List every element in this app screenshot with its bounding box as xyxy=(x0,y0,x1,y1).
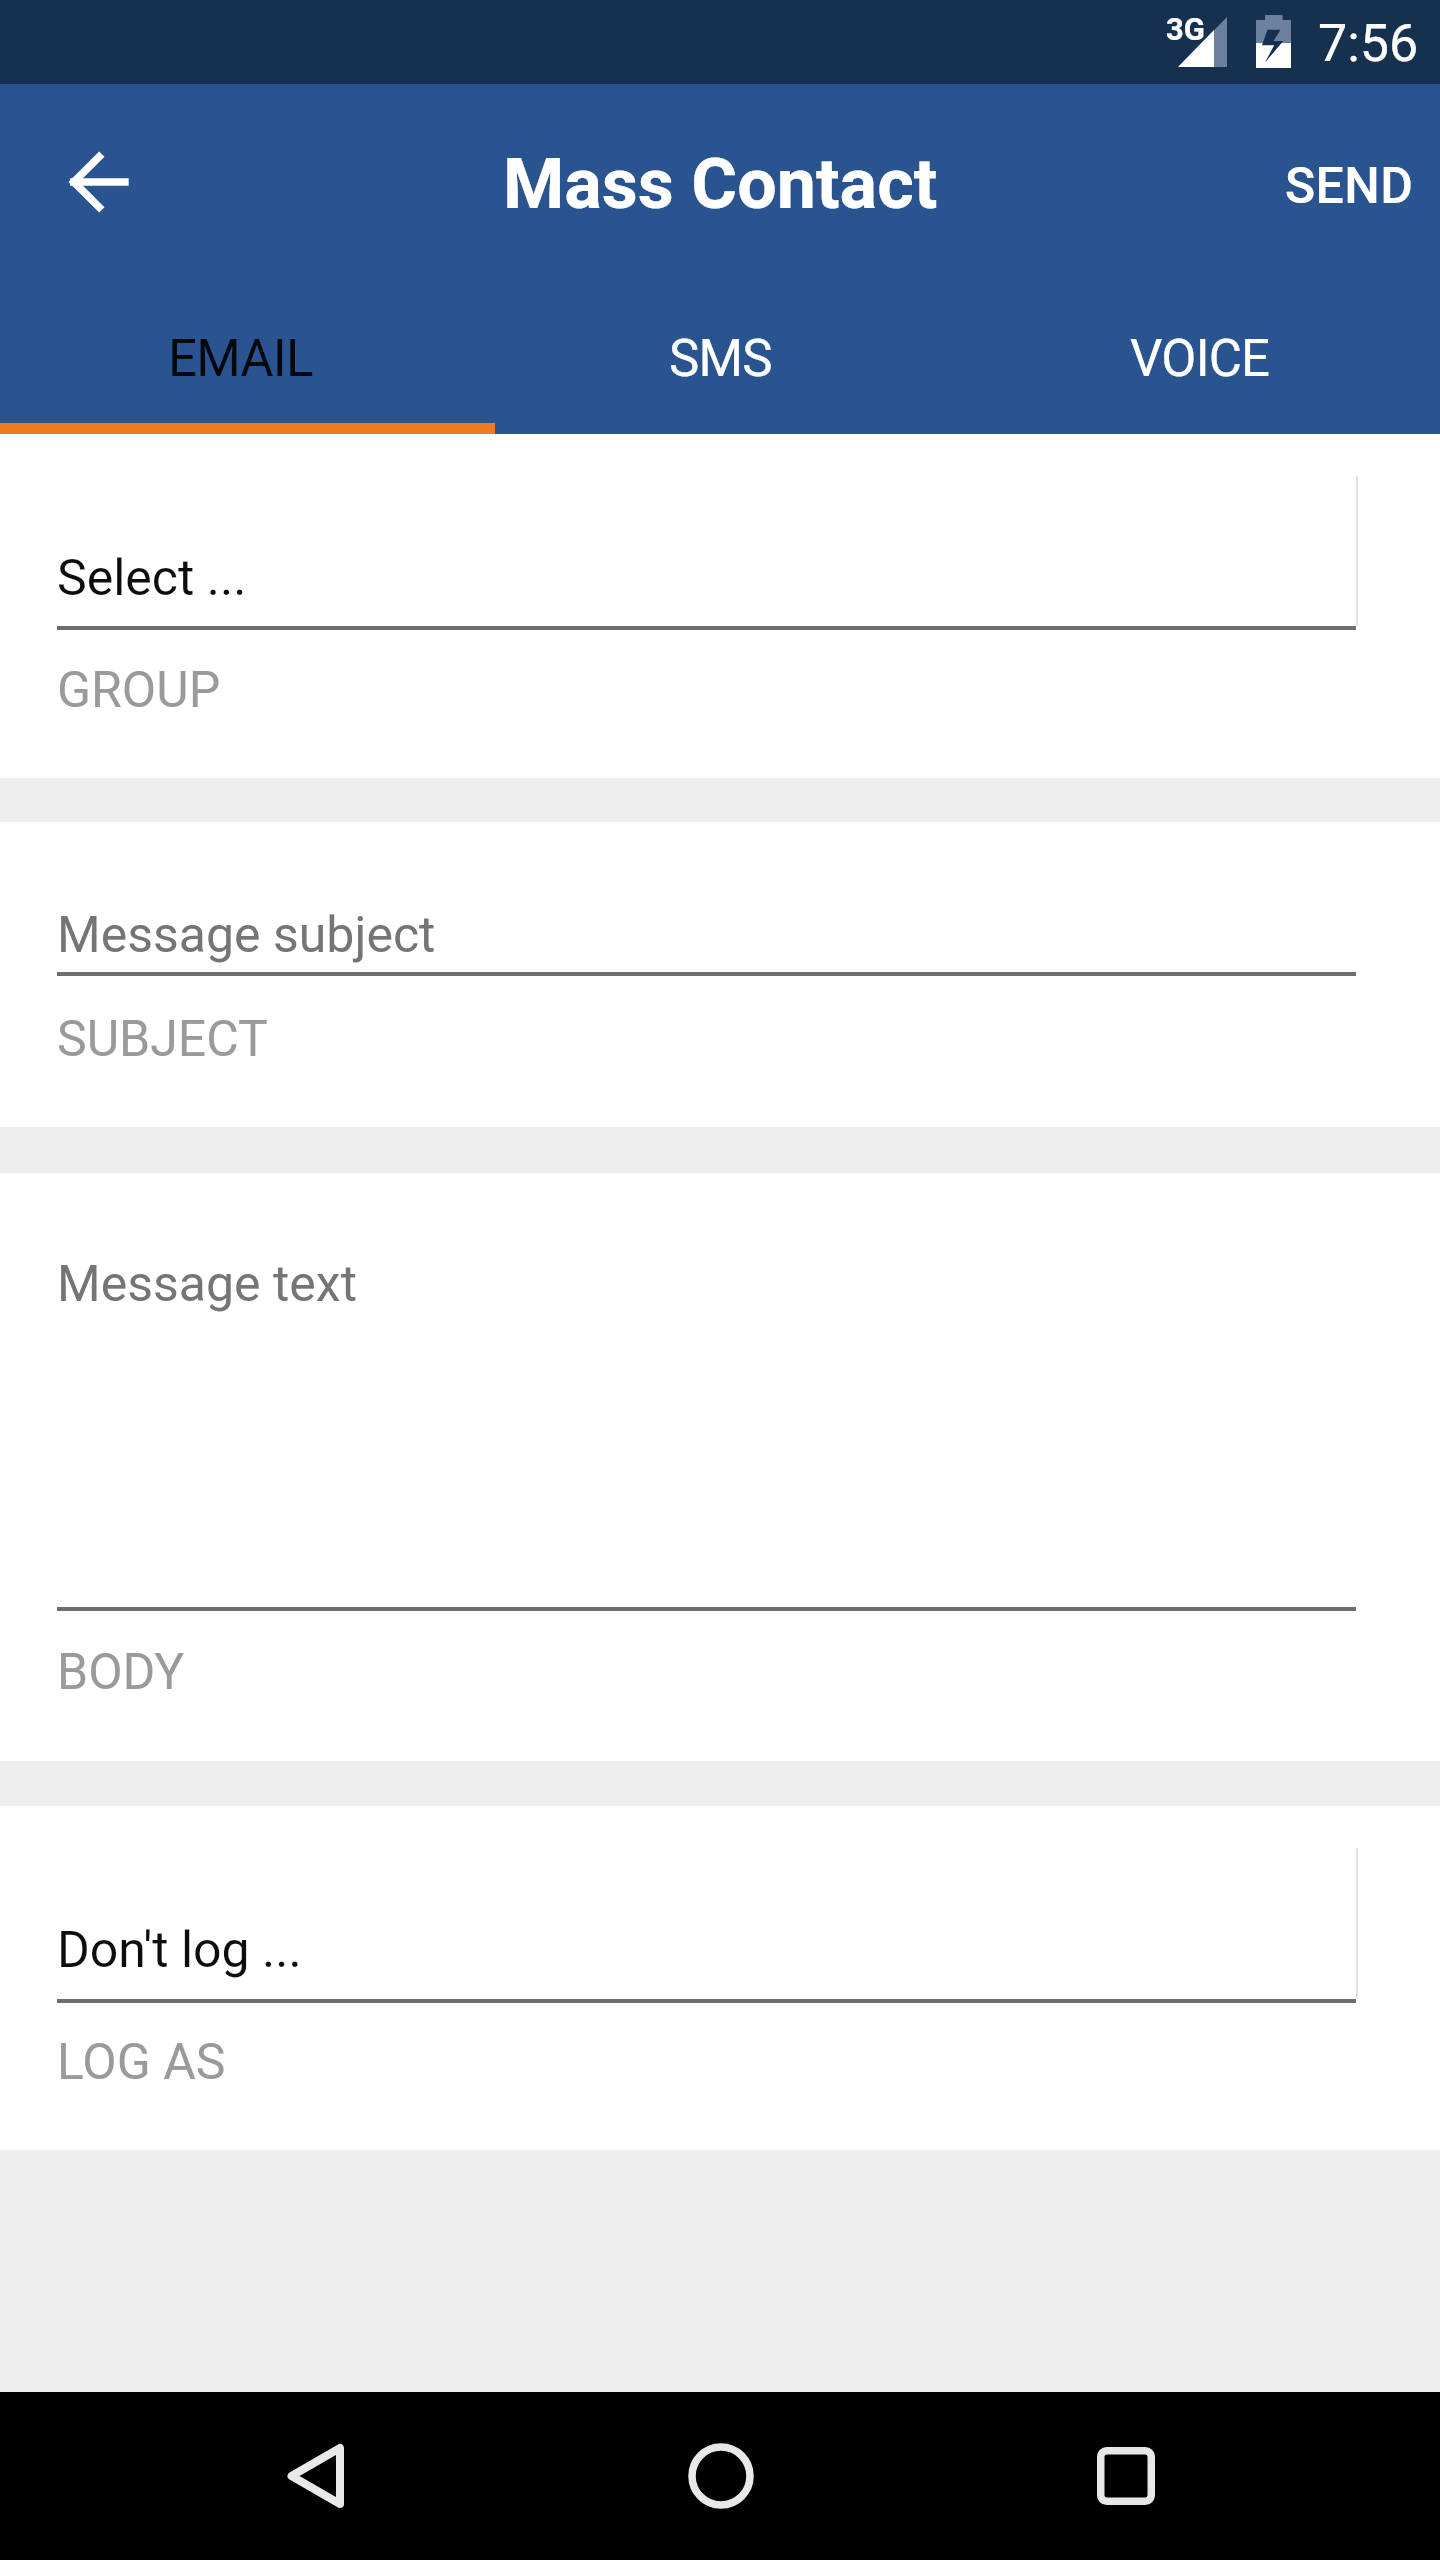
button[interactable]: Home xyxy=(518,2392,923,2560)
staticText: LOG AS xyxy=(57,2033,226,2092)
button[interactable]: Don't log ... xyxy=(0,1806,1440,2150)
staticText: SEND xyxy=(1285,157,1414,216)
button[interactable]: VOICE xyxy=(960,290,1440,434)
staticText: Message text xyxy=(57,1255,357,1314)
staticText: SMS xyxy=(669,329,772,389)
button[interactable]: SEND xyxy=(1260,122,1438,250)
staticText: EMAIL xyxy=(168,329,313,389)
staticText: Mass Contact xyxy=(503,143,938,225)
staticText: Select ... xyxy=(57,549,247,608)
button[interactable]: Back xyxy=(113,2392,518,2560)
staticText: Don't log ... xyxy=(57,1921,302,1980)
staticText: 7:56 xyxy=(1318,13,1419,74)
button[interactable]: EMAIL xyxy=(0,290,480,434)
button[interactable]: Message subject xyxy=(0,822,1440,1127)
staticText: BODY xyxy=(57,1643,185,1702)
staticText: GROUP xyxy=(57,661,221,720)
button[interactable]: SMS xyxy=(480,290,960,434)
button[interactable]: Message text xyxy=(0,1173,1440,1761)
staticText: SUBJECT xyxy=(57,1010,268,1069)
staticText: 3G xyxy=(1166,11,1205,47)
button[interactable]: Navigate up xyxy=(38,122,158,242)
staticText: Message subject xyxy=(57,906,436,965)
button[interactable]: Recent apps xyxy=(923,2392,1328,2560)
button[interactable]: Select ... xyxy=(0,434,1440,778)
staticText: VOICE xyxy=(1130,329,1270,389)
